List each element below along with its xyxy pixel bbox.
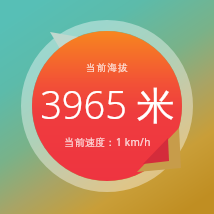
button[interactable]: Current altitude 3965 meters <box>0 0 214 214</box>
staticText: 当前海拔 <box>86 62 129 74</box>
staticText: 当前速度：1 km/h <box>64 135 151 149</box>
staticText: 3965 米 <box>40 78 175 130</box>
